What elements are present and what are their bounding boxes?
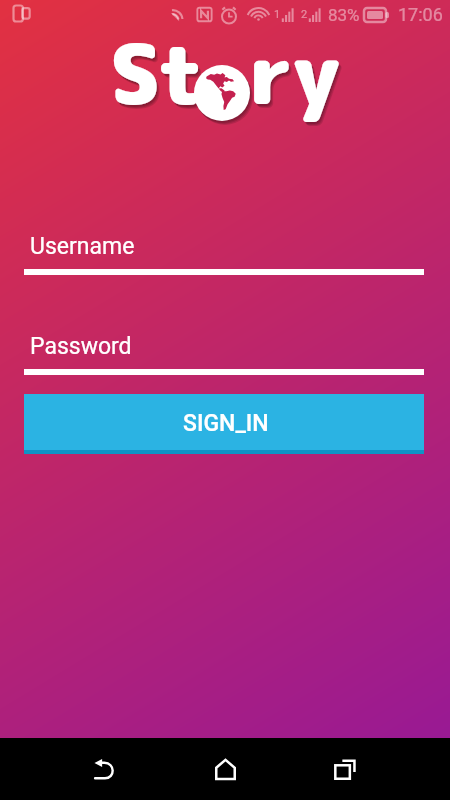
staticText: ry (251, 19, 342, 133)
staticText: ry (249, 16, 340, 130)
button[interactable]: Home (165, 738, 285, 800)
staticText: ry (250, 18, 341, 132)
staticText: 17:06 (398, 4, 443, 25)
staticText: 1 (274, 8, 281, 21)
staticText: Password (30, 333, 132, 360)
button[interactable]: SIGN_IN (24, 394, 424, 450)
staticText: St (113, 20, 207, 134)
staticText: SIGN_IN (183, 410, 269, 437)
button[interactable]: Password (0, 328, 450, 380)
staticText: St (111, 18, 205, 132)
staticText: St (112, 19, 206, 133)
button[interactable]: Back (45, 738, 165, 800)
button[interactable]: Recent apps (285, 738, 405, 800)
button[interactable]: Username (0, 228, 450, 280)
staticText: 83% (328, 5, 360, 25)
staticText: 2 (301, 8, 308, 21)
staticText: ry (252, 20, 343, 134)
staticText: St (110, 16, 204, 130)
staticText: Username (30, 233, 135, 260)
